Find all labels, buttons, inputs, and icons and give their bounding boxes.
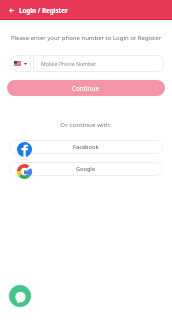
button[interactable]: Select country code	[9, 55, 31, 72]
staticText: Continue	[72, 84, 100, 92]
button[interactable]: Mobile Phone Number	[33, 55, 164, 72]
button[interactable]: Facebook	[9, 140, 163, 154]
button[interactable]: Chat support	[9, 285, 31, 307]
staticText: Please enter your phone number to Login …	[0, 34, 172, 42]
button[interactable]: Google	[9, 162, 163, 176]
button[interactable]: Back	[3, 4, 20, 17]
staticText: Google	[76, 165, 96, 173]
staticText: Or continue with:	[0, 121, 172, 129]
staticText: Mobile Phone Number	[41, 60, 97, 67]
staticText: Login / Register	[19, 6, 68, 14]
staticText: Facebook	[73, 143, 99, 151]
button[interactable]: Continue	[7, 80, 165, 96]
